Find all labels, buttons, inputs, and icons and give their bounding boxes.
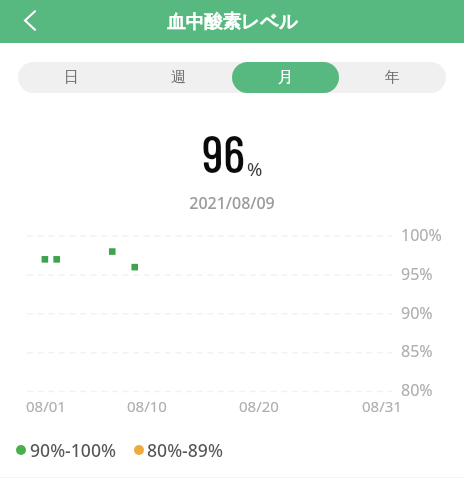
button[interactable]: Back [13, 3, 47, 37]
staticText: 月 [278, 68, 293, 87]
staticText: 08/01 [26, 396, 66, 416]
staticText: 08/31 [362, 396, 402, 416]
staticText: 週 [171, 68, 186, 87]
staticText: 08/10 [127, 396, 167, 416]
button[interactable]: 週 [125, 62, 232, 93]
button[interactable]: 月 [232, 62, 339, 93]
button[interactable]: 日 [18, 62, 125, 93]
staticText: % [247, 157, 263, 182]
staticText: 日 [64, 68, 79, 87]
button[interactable]: 年 [339, 62, 446, 93]
staticText: 100% [401, 224, 442, 246]
staticText: 85% [401, 340, 433, 362]
staticText: 96 [202, 121, 245, 183]
staticText: 血中酸素レベル [167, 10, 298, 33]
staticText: 08/20 [239, 396, 279, 416]
staticText: 2021/08/09 [0, 192, 464, 214]
staticText: 80%-89% [147, 438, 223, 462]
staticText: 年 [385, 68, 400, 87]
staticText: 90% [401, 302, 433, 324]
staticText: 90%-100% [30, 438, 116, 462]
staticText: 95% [401, 263, 433, 285]
staticText: 80% [401, 379, 433, 401]
